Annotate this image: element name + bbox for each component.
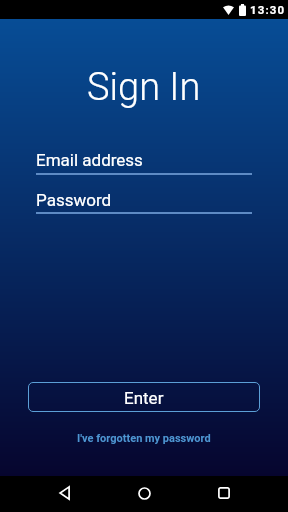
button[interactable] [218,487,230,499]
button[interactable] [138,487,151,500]
button[interactable]: I've forgotten my password [77,432,211,445]
button[interactable] [59,486,70,500]
button[interactable]: Email address [36,150,252,175]
staticText: Sign In [87,65,201,110]
staticText: Enter [124,388,164,408]
button[interactable]: Password [36,190,252,214]
button[interactable]: Enter [28,382,260,412]
staticText: 13:30 [250,3,286,16]
staticText: Password [36,190,112,210]
staticText: Email address [36,150,143,170]
